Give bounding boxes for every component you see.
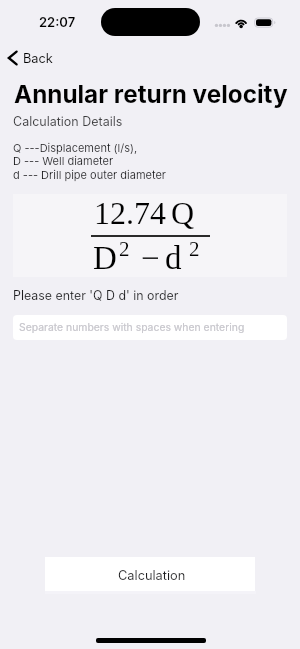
staticText: Back bbox=[23, 51, 53, 66]
staticText: 2 bbox=[189, 237, 200, 260]
button[interactable]: Back bbox=[3, 47, 53, 69]
staticText: Q bbox=[171, 195, 195, 230]
staticText: Q ---Displacement (l/s), D --- Well diam… bbox=[13, 141, 166, 182]
staticText: Please enter 'Q D d' in order bbox=[13, 288, 179, 303]
button[interactable]: Separate numbers with spaces when enteri… bbox=[13, 315, 287, 340]
button[interactable]: Calculation bbox=[45, 557, 255, 591]
staticText: D bbox=[93, 240, 117, 277]
staticText: 12.74 bbox=[94, 195, 166, 230]
staticText: − bbox=[141, 240, 160, 277]
staticText: Calculation Details bbox=[13, 114, 123, 129]
staticText: 22:07 bbox=[39, 14, 76, 30]
staticText: d bbox=[165, 240, 182, 277]
staticText: 2 bbox=[119, 237, 130, 260]
staticText: Separate numbers with spaces when enteri… bbox=[19, 321, 245, 334]
staticText: Calculation bbox=[118, 568, 186, 583]
staticText: Annular return velocity bbox=[14, 79, 288, 108]
